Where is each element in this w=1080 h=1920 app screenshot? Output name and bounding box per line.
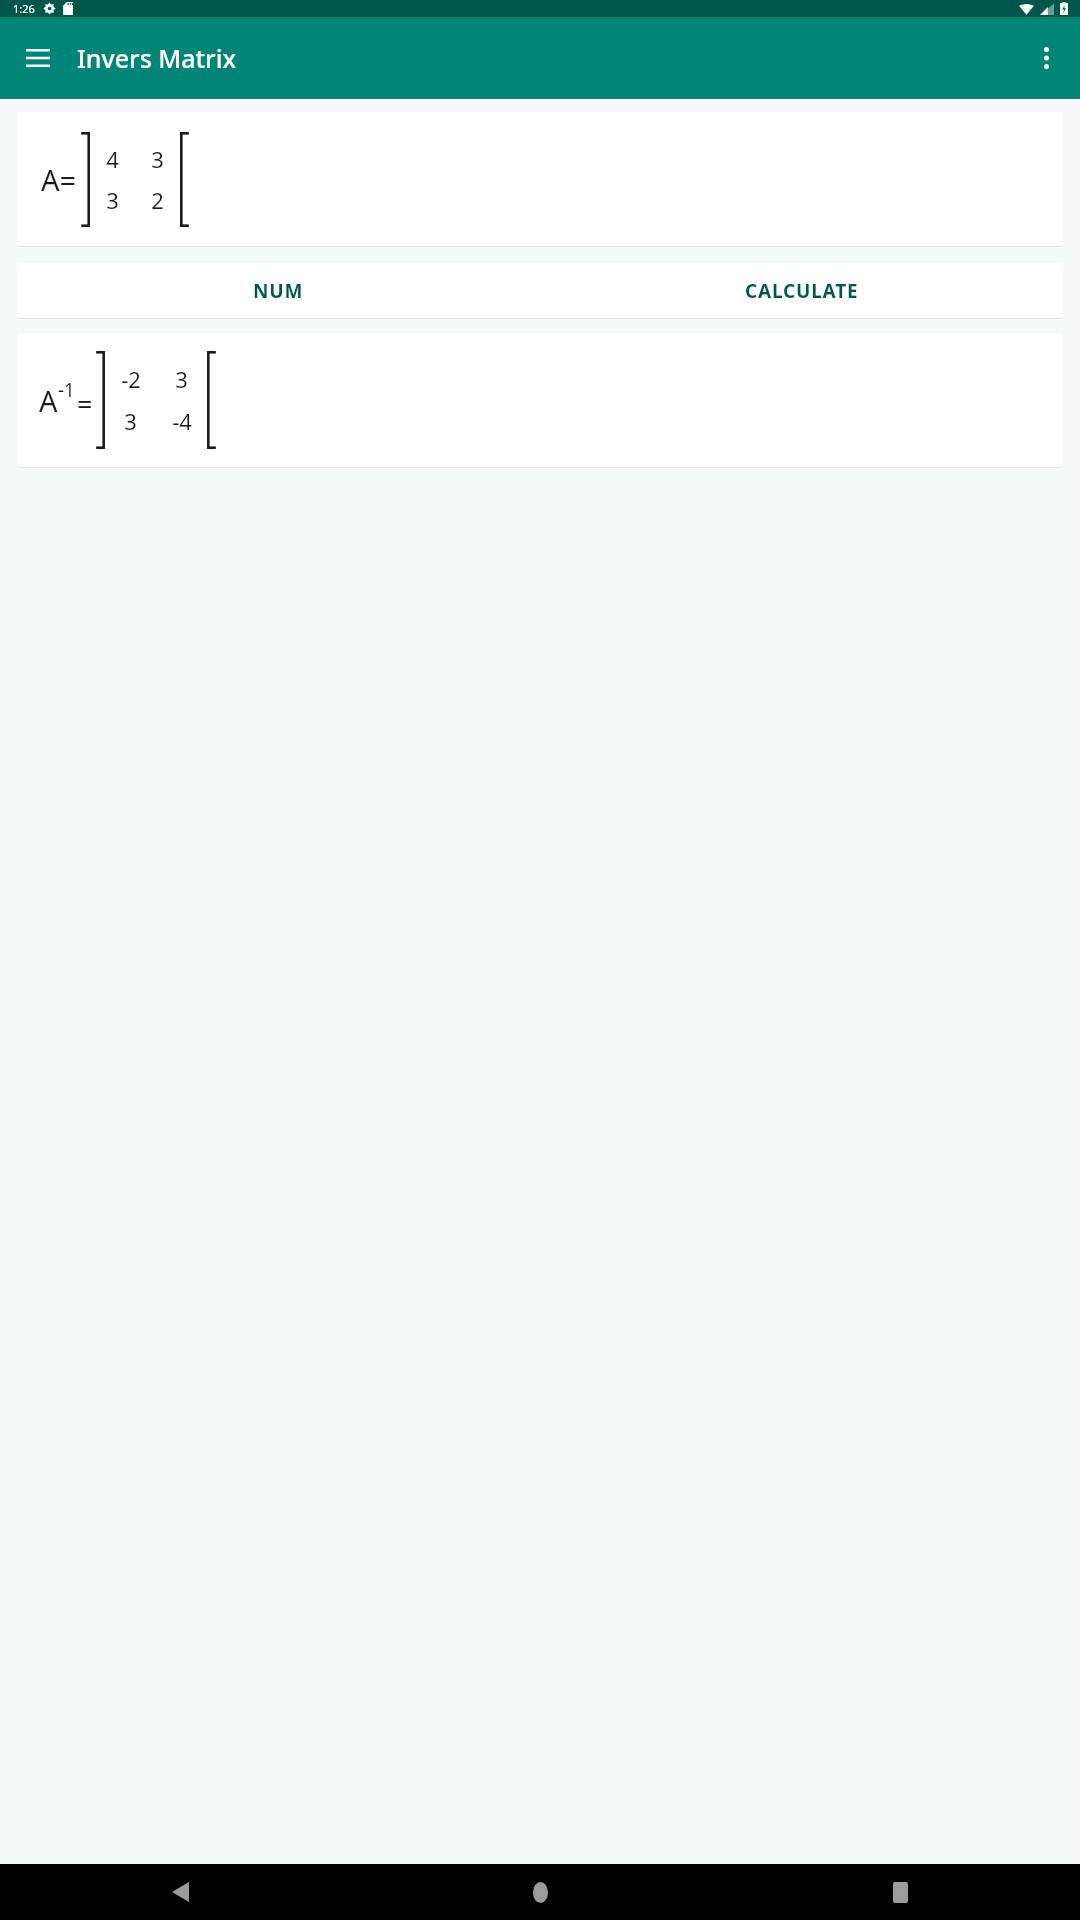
staticText: 3 (175, 364, 188, 394)
button[interactable]: Back (0, 1864, 360, 1920)
staticText: -4 (172, 406, 192, 436)
button[interactable]: NUM (17, 263, 540, 318)
staticText: A= (41, 160, 77, 199)
staticText: 3 (124, 406, 137, 436)
staticText: 3 (106, 185, 119, 215)
staticText: CALCULATE (745, 278, 859, 304)
staticText: NUM (253, 278, 304, 304)
staticText: Invers Matrix (77, 41, 237, 75)
staticText: 2 (151, 185, 164, 215)
staticText: 3 (151, 144, 164, 174)
staticText: 4 (106, 144, 119, 174)
staticText: -1 (58, 377, 75, 403)
button[interactable]: Open navigation drawer (14, 34, 62, 82)
staticText: -2 (121, 364, 141, 394)
button[interactable]: CALCULATE (540, 263, 1063, 318)
button[interactable]: Home (360, 1864, 720, 1920)
staticText: = (77, 385, 93, 422)
staticText: A (39, 381, 58, 420)
staticText: 1:26 (13, 1, 35, 16)
button[interactable]: More options (1022, 34, 1070, 82)
button[interactable]: Recent apps (720, 1864, 1080, 1920)
